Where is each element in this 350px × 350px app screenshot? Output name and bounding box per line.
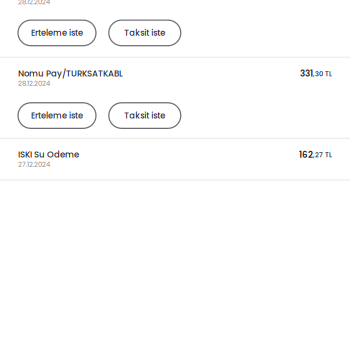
staticText: ,27 TL <box>313 150 332 160</box>
staticText: Nomu Pay/TURKSATKABL <box>18 67 123 79</box>
button[interactable]: Erteleme iste <box>18 103 96 128</box>
button[interactable]: Nomu Pay/TURKSATKABL <box>0 67 350 88</box>
staticText: Taksit iste <box>124 27 165 39</box>
staticText: 28.12.2024 <box>18 79 50 88</box>
button[interactable]: ISKI Su Odeme <box>0 149 350 169</box>
staticText: 162 <box>299 149 313 161</box>
staticText: Taksit iste <box>124 110 165 121</box>
staticText: Erteleme iste <box>31 27 83 39</box>
staticText: ISKI Su Odeme <box>18 149 79 160</box>
staticText: Erteleme iste <box>31 110 83 121</box>
staticText: 331 <box>300 67 313 80</box>
staticText: 28.12.2024 <box>18 0 50 7</box>
button[interactable]: Taksit iste <box>109 103 181 128</box>
staticText: ,30 TL <box>313 69 332 79</box>
button[interactable]: Erteleme iste <box>18 20 96 46</box>
button[interactable]: Taksit iste <box>109 20 181 46</box>
staticText: 27.12.2024 <box>18 160 50 169</box>
button[interactable]: 28.12.2024 <box>0 0 68 7</box>
